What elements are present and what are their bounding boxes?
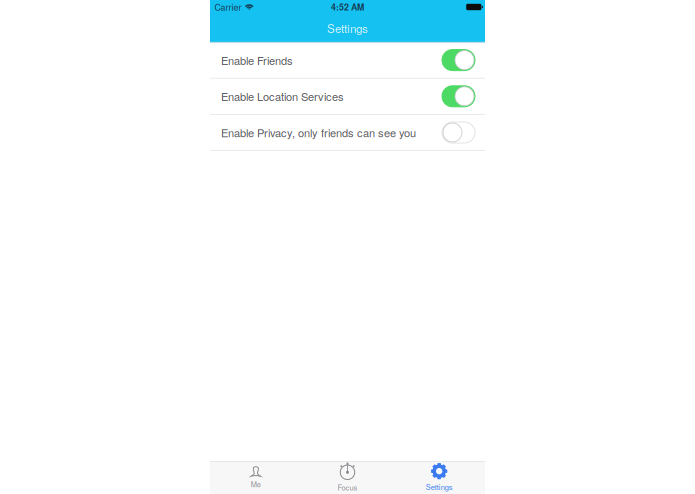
staticText: Carrier (214, 1, 241, 13)
staticText: 4:52 AM (331, 1, 364, 13)
button[interactable]: Enable Privacy, only friends can see you (210, 115, 485, 151)
staticText: Enable Location Services (221, 88, 344, 104)
staticText: Settings (426, 481, 453, 492)
button[interactable]: Focus (302, 462, 393, 494)
staticText: Enable Privacy, only friends can see you (221, 125, 416, 140)
button[interactable]: Settings (393, 462, 485, 494)
staticText: Settings (327, 20, 368, 36)
staticText: Focus (337, 482, 357, 493)
button[interactable]: Me (210, 462, 302, 494)
staticText: Me (251, 479, 261, 489)
staticText: Enable Friends (221, 52, 293, 68)
button[interactable]: Enable Friends (210, 42, 485, 79)
button[interactable]: Enable Location Services (210, 79, 485, 115)
